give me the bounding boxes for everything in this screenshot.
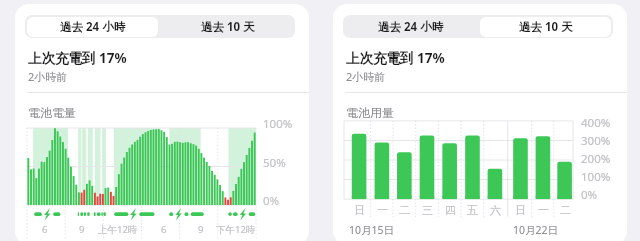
- staticText: 電池電量: [28, 105, 76, 120]
- staticText: 過去 10 天: [201, 19, 255, 35]
- staticText: 100%: [581, 169, 611, 185]
- staticText: 0%: [263, 193, 280, 209]
- staticText: 10月15日: [349, 223, 395, 237]
- staticText: 二: [560, 203, 571, 217]
- staticText: 50%: [263, 155, 286, 171]
- staticText: 過去 10 天: [519, 19, 573, 35]
- staticText: 四: [445, 203, 456, 217]
- button[interactable]: 過去 24 小時: [25, 15, 160, 38]
- staticText: 一: [377, 203, 388, 217]
- staticText: 電池用量: [346, 105, 394, 120]
- staticText: 100%: [263, 116, 293, 132]
- staticText: 9: [79, 223, 85, 236]
- staticText: 上午12時: [98, 223, 138, 236]
- staticText: 9: [198, 223, 204, 236]
- button[interactable]: 過去 10 天: [478, 15, 613, 38]
- staticText: 6: [42, 223, 48, 236]
- staticText: 6: [161, 223, 167, 236]
- staticText: 二: [399, 203, 410, 217]
- staticText: 過去 24 小時: [378, 19, 444, 35]
- staticText: 五: [467, 203, 478, 217]
- staticText: 2小時前: [346, 69, 386, 84]
- button[interactable]: 過去 24 小時: [343, 15, 478, 38]
- staticText: 2小時前: [28, 69, 68, 84]
- staticText: 300%: [581, 133, 611, 149]
- staticText: 400%: [581, 115, 611, 131]
- staticText: 一: [538, 203, 549, 217]
- staticText: 過去 24 小時: [60, 19, 126, 35]
- staticText: 六: [490, 203, 501, 217]
- staticText: 日: [515, 203, 526, 217]
- staticText: 三: [422, 203, 433, 217]
- staticText: 上次充電到 17%: [346, 49, 445, 67]
- staticText: 10月22日: [513, 223, 559, 237]
- staticText: 下午12時: [216, 223, 256, 236]
- staticText: 日: [354, 203, 365, 217]
- staticText: 上次充電到 17%: [28, 49, 127, 67]
- staticText: 200%: [581, 151, 611, 167]
- staticText: 0%: [581, 187, 598, 203]
- button[interactable]: 過去 10 天: [160, 15, 295, 38]
